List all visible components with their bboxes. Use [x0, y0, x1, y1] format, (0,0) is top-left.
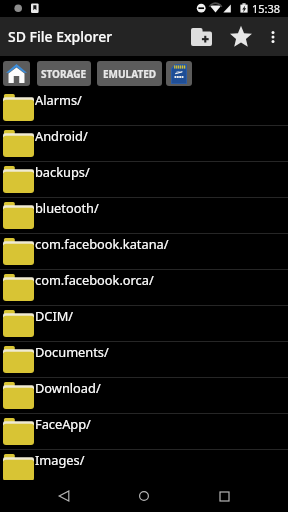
button[interactable]: com.facebook.orca/	[0, 270, 288, 306]
staticText: FaceApp/	[35, 415, 91, 432]
button[interactable]: Android/	[0, 126, 288, 162]
button[interactable]: SD card	[166, 61, 192, 86]
button[interactable]: STORAGE	[37, 61, 91, 86]
button[interactable]: Favorites	[217, 17, 257, 56]
staticText: STORAGE	[41, 67, 87, 81]
button[interactable]: New folder	[182, 17, 217, 56]
button[interactable]: Documents/	[0, 342, 288, 378]
button[interactable]: More options	[257, 17, 288, 56]
staticText: com.facebook.katana/	[35, 235, 169, 252]
button[interactable]: com.facebook.katana/	[0, 234, 288, 270]
button[interactable]: Download/	[0, 378, 288, 414]
button[interactable]: EMULATED	[97, 61, 162, 86]
staticText: Images/	[35, 451, 85, 468]
staticText: bluetooth/	[35, 199, 99, 216]
staticText: Android/	[35, 127, 88, 144]
staticText: Alarms/	[35, 91, 82, 108]
button[interactable]: Recent apps	[184, 480, 264, 512]
button[interactable]: Home	[3, 61, 30, 86]
button[interactable]: FaceApp/	[0, 414, 288, 450]
button[interactable]: bluetooth/	[0, 198, 288, 234]
staticText: Documents/	[35, 343, 109, 360]
button[interactable]: Alarms/	[0, 90, 288, 126]
button[interactable]: Back	[24, 480, 104, 512]
staticText: 15:38	[252, 1, 281, 16]
button[interactable]: Home	[104, 480, 184, 512]
staticText: SD File Explorer	[8, 27, 113, 46]
button[interactable]: backups/	[0, 162, 288, 198]
staticText: com.facebook.orca/	[35, 271, 154, 288]
staticText: DCIM/	[35, 307, 74, 324]
staticText: Download/	[35, 379, 101, 396]
button[interactable]: DCIM/	[0, 306, 288, 342]
button[interactable]: Images/	[0, 450, 288, 486]
staticText: EMULATED	[103, 67, 157, 81]
staticText: backups/	[35, 163, 90, 180]
